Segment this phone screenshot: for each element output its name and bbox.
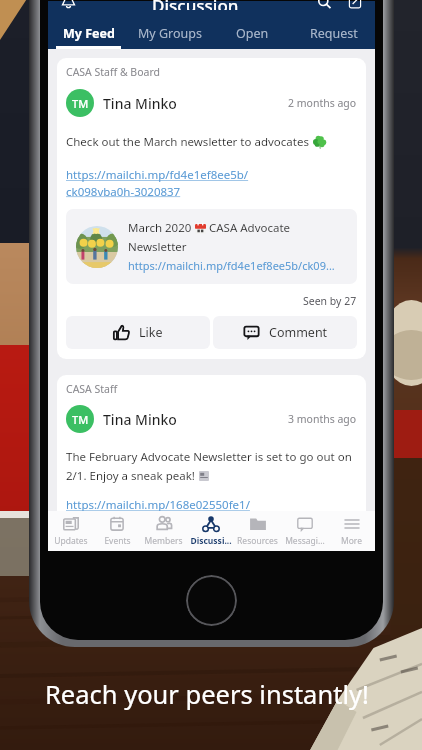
staticText: My Groups — [138, 25, 202, 42]
button[interactable]: CASA Staff & Board — [57, 58, 366, 359]
staticText: TM — [72, 96, 89, 111]
staticText: Check out the March newsletter to advoca… — [66, 134, 309, 150]
staticText: My Feed — [63, 25, 115, 42]
button[interactable]: CASA Staff — [57, 375, 366, 523]
staticText: Newsletter — [128, 239, 187, 255]
staticText: Open — [236, 25, 269, 42]
staticText: CASA Advocate — [206, 220, 291, 236]
button[interactable]: Open — [211, 17, 293, 49]
staticText: 2/1. Enjoy a sneak peak! — [66, 468, 195, 484]
staticText: Request — [310, 25, 358, 42]
staticText: TM — [72, 412, 89, 427]
staticText: March 2020 — [128, 220, 195, 236]
button[interactable]: My Groups — [129, 17, 211, 49]
button[interactable]: Resources — [234, 511, 281, 551]
button[interactable]: My Feed — [48, 17, 129, 49]
button[interactable]: Updates — [48, 511, 94, 551]
button[interactable]: Request — [293, 17, 375, 49]
staticText: Messagi... — [285, 535, 325, 547]
staticText: Discussi... — [190, 535, 232, 547]
button[interactable]: Search — [315, 0, 333, 10]
staticText: Tina Minko — [103, 410, 177, 429]
button[interactable]: Events — [94, 511, 140, 551]
button[interactable]: Notifications — [59, 0, 77, 10]
staticText: The February Advocate Newsletter is set … — [66, 449, 352, 465]
button[interactable]: Members — [140, 511, 187, 551]
button[interactable]: Discussi... — [187, 511, 234, 551]
button[interactable]: New post — [346, 0, 364, 10]
button[interactable]: Comment — [213, 316, 357, 349]
staticText: More — [341, 535, 362, 547]
staticText: Tina Minko — [103, 94, 177, 113]
button[interactable]: Messagi... — [281, 511, 328, 551]
staticText: Reach your peers instantly! — [45, 677, 369, 712]
button[interactable]: Like — [66, 316, 210, 349]
staticText: https://mailchi.mp/168e02550fe1/ — [66, 497, 250, 513]
staticText: CASA Staff — [66, 382, 118, 396]
staticText: Events — [104, 535, 131, 547]
staticText: https://mailchi.mp/fd4e1ef8ee5b/ ck098vb… — [66, 167, 249, 199]
staticText: Resources — [237, 535, 278, 547]
staticText: CASA Staff & Board — [66, 65, 161, 79]
staticText: Comment — [269, 324, 328, 341]
staticText: Updates — [54, 535, 88, 547]
staticText: Like — [139, 324, 163, 341]
staticText: 2 months ago — [288, 96, 357, 110]
staticText: https://mailchi.mp/fd4e1ef8ee5b/ck09... — [128, 258, 335, 273]
button[interactable]: March 2020 — [66, 209, 357, 284]
staticText: Discussion — [152, 0, 239, 10]
staticText: Seen by 27 — [303, 294, 357, 308]
button[interactable]: More — [328, 511, 375, 551]
staticText: 3 months ago — [288, 412, 357, 426]
staticText: Members — [144, 535, 183, 547]
